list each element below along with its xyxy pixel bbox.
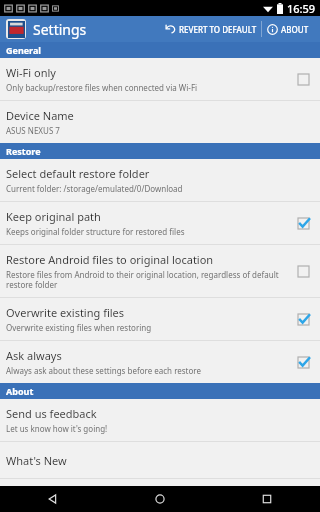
button[interactable]: Wi-Fi only bbox=[292, 68, 314, 90]
staticText: Keeps original folder structure for rest… bbox=[6, 226, 185, 237]
staticText: Only backup/restore files when connected… bbox=[6, 82, 198, 93]
staticText: Settings bbox=[33, 20, 87, 39]
button[interactable]: Select default restore folder bbox=[0, 159, 320, 201]
button[interactable]: Keep original path bbox=[292, 212, 314, 234]
staticText: Restore bbox=[6, 145, 41, 157]
staticText: Select default restore folder bbox=[6, 166, 150, 181]
button[interactable]: REVERT TO DEFAULT bbox=[161, 21, 261, 38]
button[interactable]: Device Name bbox=[0, 101, 320, 143]
staticText: Always ask about these settings before e… bbox=[6, 365, 201, 376]
button[interactable]: ABOUT bbox=[262, 21, 314, 38]
staticText: Overwrite existing files bbox=[6, 305, 125, 320]
staticText: About bbox=[6, 385, 34, 397]
button[interactable]: Ask always bbox=[0, 341, 320, 383]
staticText: General bbox=[6, 44, 42, 56]
staticText: Keep original path bbox=[6, 209, 101, 224]
staticText: Ask always bbox=[6, 348, 62, 363]
staticText: Current folder: /storage/emulated/0/Down… bbox=[6, 183, 183, 194]
button[interactable]: Back bbox=[0, 486, 106, 512]
staticText: Device Name bbox=[6, 108, 74, 123]
staticText: Let us know how it's going! bbox=[6, 423, 108, 434]
button[interactable]: Restore Android files to original locati… bbox=[292, 260, 314, 282]
staticText: REVERT TO DEFAULT bbox=[179, 24, 257, 35]
button[interactable]: App icon bbox=[6, 19, 26, 39]
staticText: Overwrite existing files when restoring bbox=[6, 322, 152, 333]
staticText: What's New bbox=[6, 453, 67, 468]
button[interactable]: Restore Android files to original locati… bbox=[0, 245, 320, 297]
staticText: ABOUT bbox=[281, 24, 309, 35]
button[interactable]: Ask always bbox=[292, 351, 314, 373]
staticText: Wi-Fi only bbox=[6, 65, 56, 80]
button[interactable]: Home bbox=[106, 486, 213, 512]
button[interactable]: Overwrite existing files bbox=[0, 298, 320, 340]
staticText: Send us feedback bbox=[6, 406, 97, 421]
button[interactable]: Keep original path bbox=[0, 202, 320, 244]
button[interactable]: Recent apps bbox=[213, 486, 320, 512]
staticText: Restore files from Android to their orig… bbox=[6, 269, 284, 290]
staticText: 16:59 bbox=[287, 1, 316, 16]
button[interactable]: What's New bbox=[0, 442, 320, 478]
button[interactable]: Send us feedback bbox=[0, 399, 320, 441]
button[interactable]: Overwrite existing files bbox=[292, 308, 314, 330]
button[interactable]: Wi-Fi only bbox=[0, 58, 320, 100]
staticText: ASUS NEXUS 7 bbox=[6, 125, 60, 136]
staticText: Restore Android files to original locati… bbox=[6, 252, 214, 267]
